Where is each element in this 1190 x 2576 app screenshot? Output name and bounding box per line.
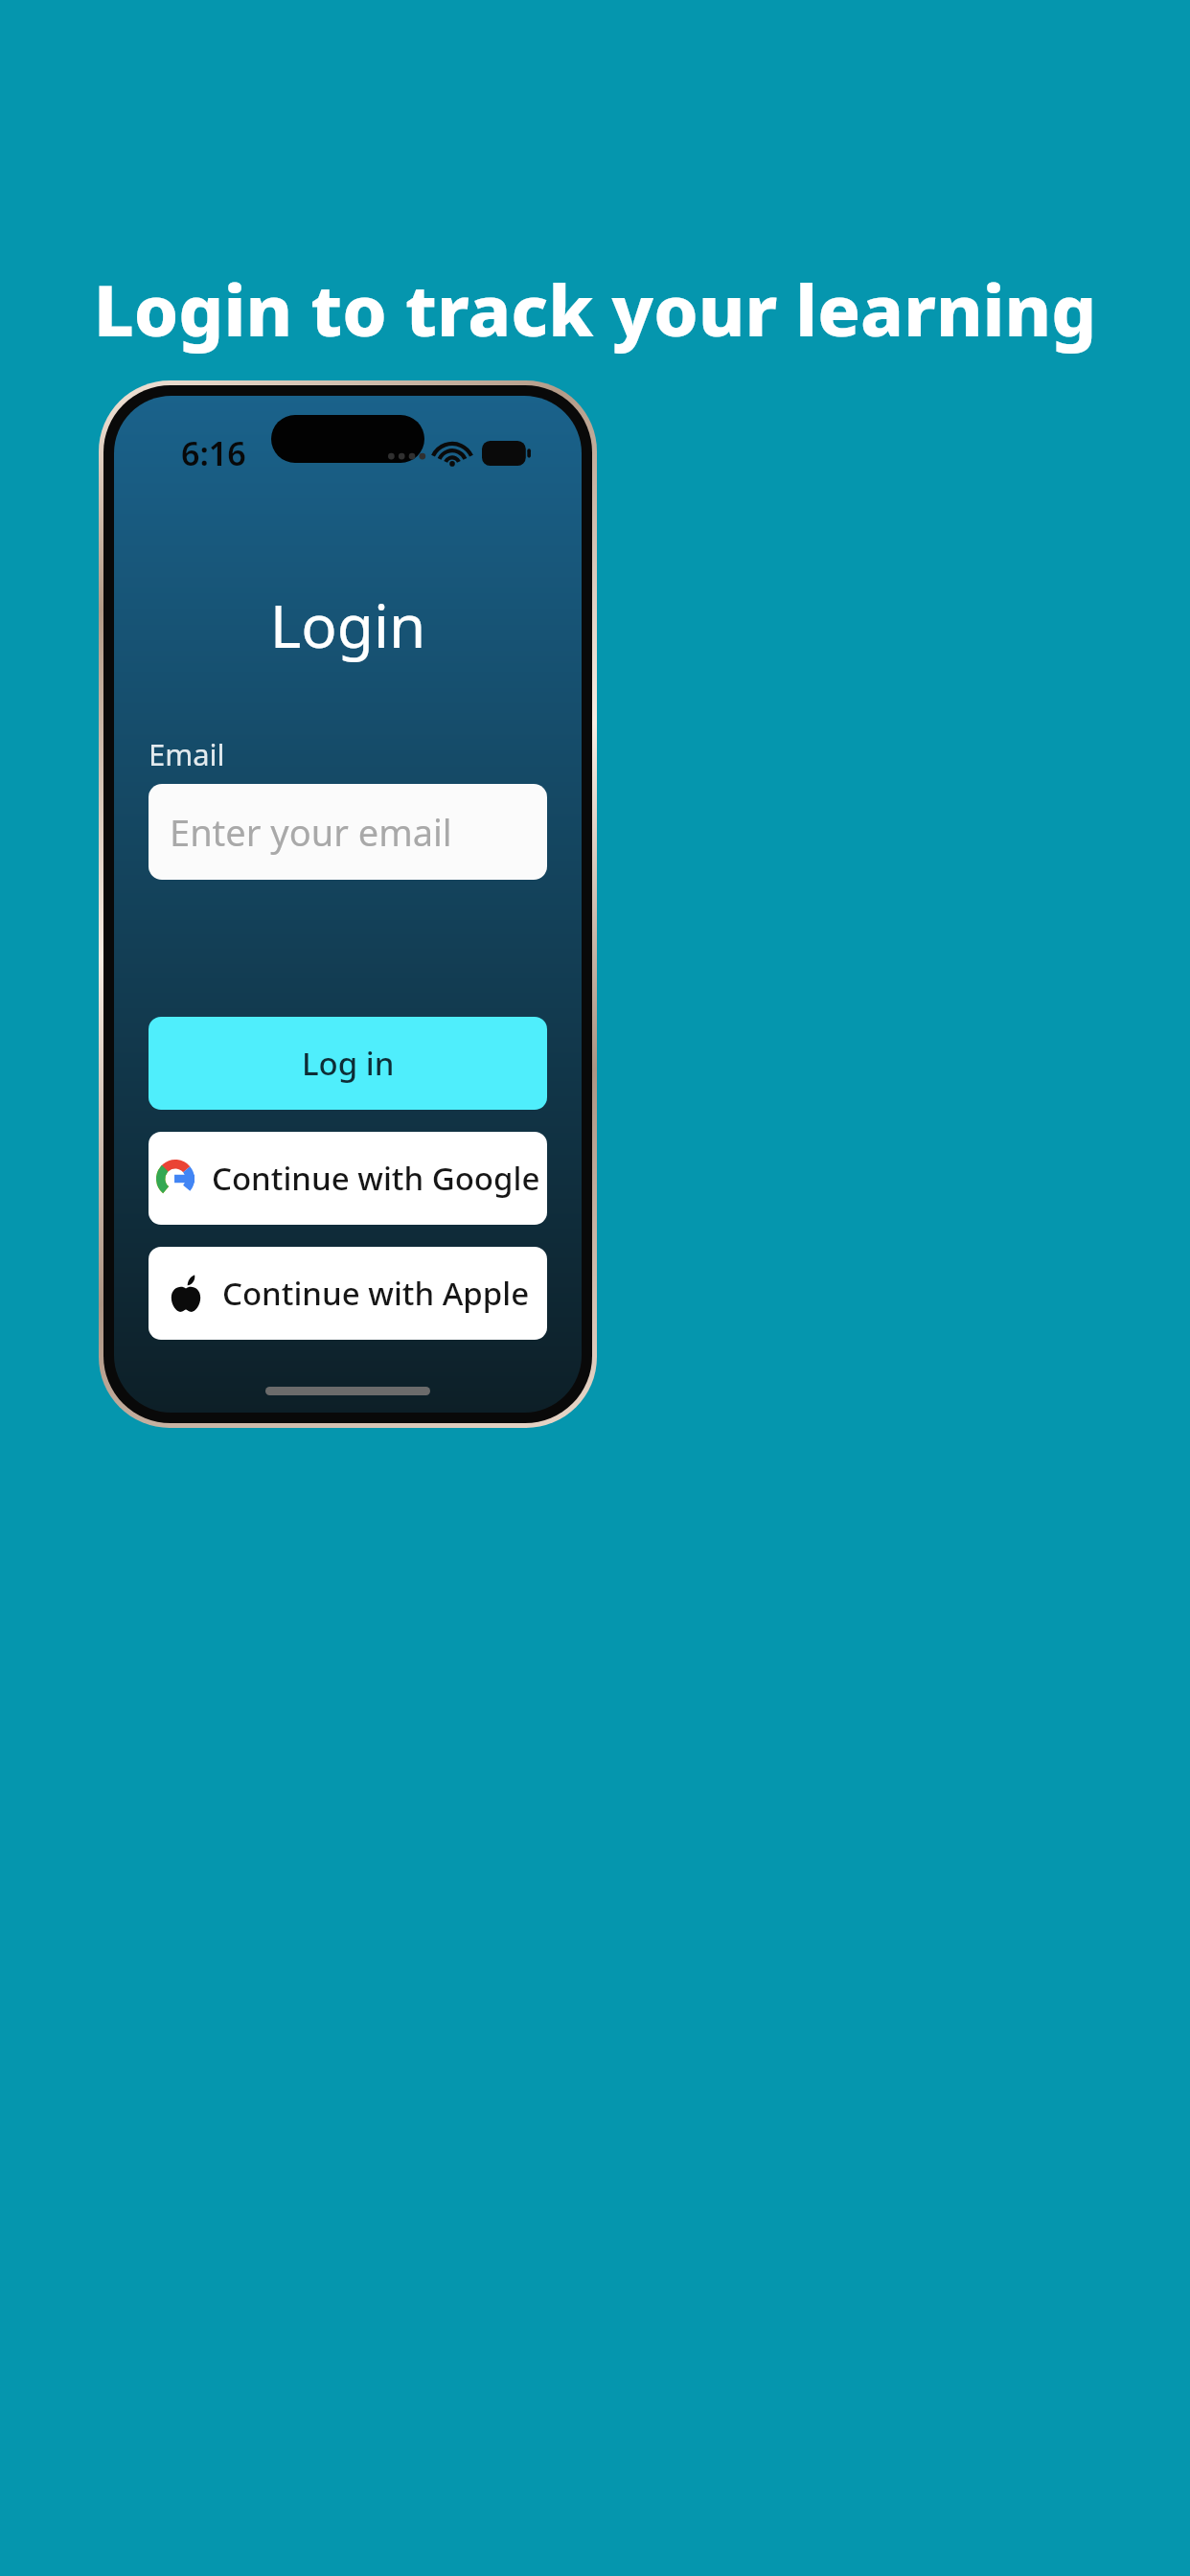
staticText: Continue with Apple xyxy=(222,1272,530,1315)
staticText: Continue with Google xyxy=(212,1157,540,1200)
button[interactable]: Enter your email xyxy=(149,784,547,880)
staticText: 6:16 xyxy=(181,431,246,475)
staticText: Login to track your learning xyxy=(86,261,1104,357)
button[interactable]: Apple xyxy=(149,1247,547,1340)
other: Apple xyxy=(167,1275,205,1313)
button[interactable]: Log in xyxy=(149,1017,547,1110)
staticText: Enter your email xyxy=(170,807,452,857)
other: Google xyxy=(156,1160,195,1198)
staticText: Log in xyxy=(302,1042,395,1085)
staticText: Login xyxy=(114,585,582,665)
staticText: Email xyxy=(149,734,225,774)
button[interactable]: Google xyxy=(149,1132,547,1225)
